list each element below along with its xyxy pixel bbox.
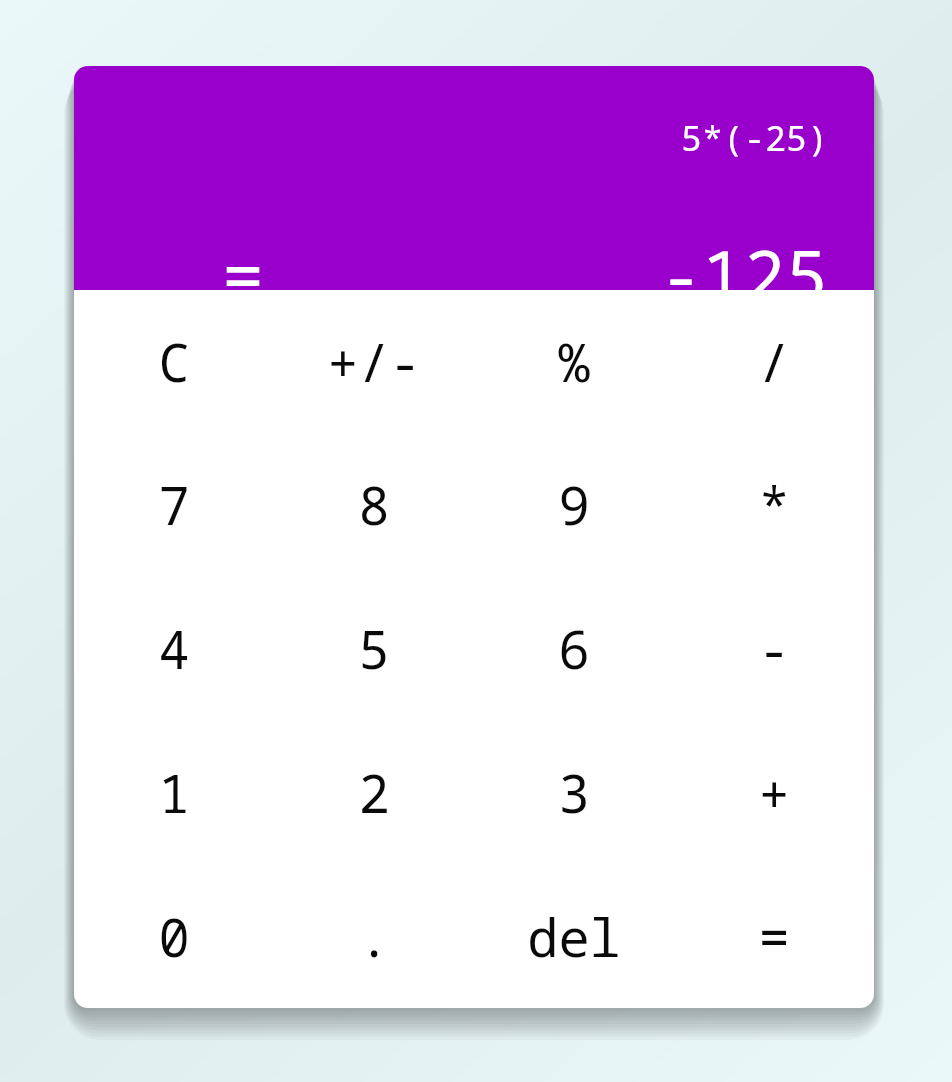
button[interactable]: .: [274, 864, 474, 1008]
button[interactable]: =: [674, 864, 874, 1008]
button[interactable]: 1: [74, 720, 274, 864]
staticText: 9: [558, 469, 590, 540]
staticText: *: [758, 469, 790, 540]
button[interactable]: +/-: [274, 290, 474, 433]
button[interactable]: 2: [274, 720, 474, 864]
staticText: =: [758, 901, 790, 972]
button[interactable]: +: [674, 720, 874, 864]
button[interactable]: C: [74, 290, 274, 433]
staticText: 3: [558, 757, 590, 828]
staticText: 5: [358, 613, 390, 684]
button[interactable]: 4: [74, 576, 274, 720]
staticText: 1: [158, 757, 190, 828]
staticText: =: [222, 226, 264, 321]
button[interactable]: 3: [474, 720, 674, 864]
button[interactable]: -: [674, 576, 874, 720]
button[interactable]: 7: [74, 433, 274, 576]
staticText: -: [758, 613, 790, 684]
staticText: /: [758, 326, 790, 397]
button[interactable]: /: [674, 290, 874, 433]
button[interactable]: 0: [74, 864, 274, 1008]
staticText: del: [527, 901, 621, 972]
staticText: .: [358, 901, 390, 972]
button[interactable]: 8: [274, 433, 474, 576]
button[interactable]: *: [674, 433, 874, 576]
staticText: +/-: [327, 326, 421, 397]
staticText: 7: [158, 469, 190, 540]
staticText: %: [558, 326, 590, 397]
button[interactable]: 9: [474, 433, 674, 576]
staticText: 6: [558, 613, 590, 684]
staticText: +: [758, 757, 790, 828]
staticText: 5*(-25): [680, 114, 828, 162]
button[interactable]: 6: [474, 576, 674, 720]
staticText: 2: [358, 757, 390, 828]
staticText: -125: [660, 226, 828, 321]
staticText: C: [158, 326, 190, 397]
staticText: 4: [158, 613, 190, 684]
button[interactable]: %: [474, 290, 674, 433]
staticText: 8: [358, 469, 390, 540]
button[interactable]: 5: [274, 576, 474, 720]
button[interactable]: del: [474, 864, 674, 1008]
staticText: 0: [158, 901, 190, 972]
